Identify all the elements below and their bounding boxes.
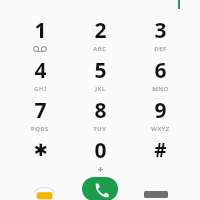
- staticText: MNO: [152, 85, 169, 93]
- staticText: GHI: [34, 85, 47, 93]
- button[interactable]: ✱: [12, 134, 68, 174]
- staticText: 3: [154, 16, 167, 45]
- button[interactable]: 2: [72, 14, 128, 54]
- staticText: WXYZ: [151, 125, 170, 133]
- staticText: TUV: [93, 125, 107, 133]
- staticText: 6: [154, 56, 167, 85]
- staticText: JKL: [95, 85, 106, 93]
- button[interactable]: 1: [12, 14, 68, 54]
- button[interactable]: #: [132, 134, 188, 174]
- button[interactable]: 4: [12, 54, 68, 94]
- staticText: #: [154, 137, 167, 163]
- staticText: 0: [94, 136, 107, 165]
- staticText: DEF: [154, 45, 167, 53]
- staticText: 4: [34, 56, 47, 85]
- button[interactable]: Backspace: [140, 186, 172, 200]
- staticText: 7: [34, 96, 47, 125]
- button[interactable]: 9: [132, 94, 188, 134]
- staticText: 5: [94, 56, 107, 85]
- staticText: 1: [34, 16, 47, 45]
- staticText: ✱: [33, 140, 48, 160]
- button[interactable]: 7: [12, 94, 68, 134]
- staticText: 8: [94, 96, 107, 125]
- button[interactable]: Call: [82, 177, 118, 200]
- button[interactable]: 0: [72, 134, 128, 174]
- button[interactable]: Contacts: [28, 184, 62, 200]
- staticText: ABC: [93, 45, 107, 53]
- staticText: 9: [154, 96, 167, 125]
- button[interactable]: 6: [132, 54, 188, 94]
- button[interactable]: 5: [72, 54, 128, 94]
- button[interactable]: 8: [72, 94, 128, 134]
- staticText: PQRS: [31, 125, 49, 133]
- button[interactable]: 3: [132, 14, 188, 54]
- staticText: 2: [94, 16, 107, 45]
